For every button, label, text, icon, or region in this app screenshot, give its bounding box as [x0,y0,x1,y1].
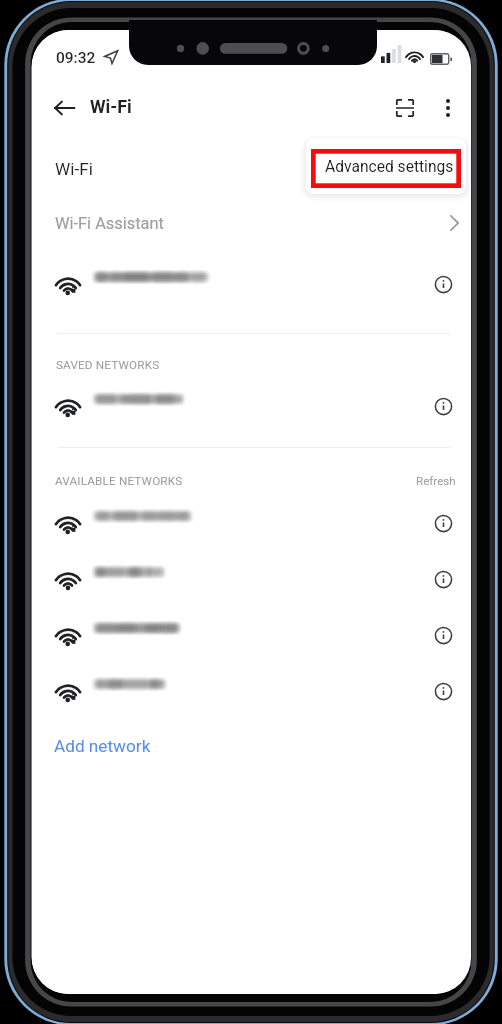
staticText: AVAILABLE NETWORKS [55,474,183,488]
staticText: SAVED NETWORKS [56,358,160,372]
button[interactable]: Wi-Fi [32,146,471,192]
button[interactable]: Network details [32,664,471,720]
button[interactable]: Advanced settings [306,138,466,194]
button[interactable]: Network details [426,562,460,596]
button[interactable]: Network details [426,618,460,652]
button[interactable]: Network details [32,552,471,608]
button[interactable]: Network details [426,389,460,423]
button[interactable]: Refresh [400,464,471,498]
button[interactable]: Back [42,86,86,130]
staticText: Wi-Fi [55,159,93,179]
staticText: Refresh [416,474,456,488]
button[interactable]: More options [424,84,471,132]
staticText: Wi-Fi Assistant [55,214,164,233]
button[interactable]: Add network [32,726,192,766]
button[interactable]: Network details [32,496,471,552]
staticText: Wi-Fi [90,96,132,117]
staticText: Add network [54,736,151,756]
staticText: 09:32 [56,49,96,67]
button[interactable]: Network details [32,379,471,435]
button[interactable]: Network details [32,257,471,313]
button[interactable]: Scan QR code [381,84,429,132]
button[interactable]: Network details [32,608,471,664]
staticText: Advanced settings [325,158,454,176]
button[interactable]: Wi-Fi Assistant [32,199,471,247]
button[interactable]: Network details [426,267,460,301]
button[interactable]: Network details [426,506,460,540]
button[interactable]: Network details [426,674,460,708]
